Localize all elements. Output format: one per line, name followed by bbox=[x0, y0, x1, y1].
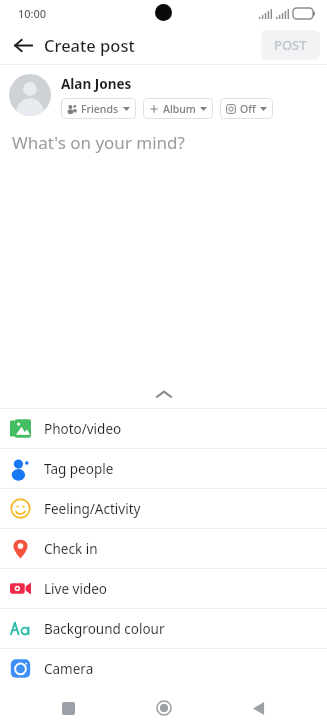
button[interactable]: Home bbox=[148, 692, 180, 724]
staticText: Create post bbox=[44, 34, 135, 56]
staticText: POST bbox=[274, 36, 307, 54]
staticText: Background colour bbox=[44, 620, 165, 638]
button[interactable]: Check in bbox=[0, 529, 327, 568]
staticText: Check in bbox=[44, 540, 98, 558]
button[interactable]: Recents bbox=[52, 692, 84, 724]
staticText: Feeling/Activity bbox=[44, 500, 141, 518]
staticText: GIF bbox=[44, 700, 66, 718]
button[interactable]: Background colour bbox=[0, 609, 327, 648]
button[interactable]: Tag people bbox=[0, 449, 327, 488]
staticText: What's on your mind? bbox=[12, 131, 185, 154]
button[interactable]: Live video bbox=[0, 569, 327, 608]
button[interactable]: Camera bbox=[0, 649, 327, 688]
button[interactable]: Collapse bbox=[0, 380, 327, 408]
button[interactable]: Feeling/Activity bbox=[0, 489, 327, 528]
staticText: Photo/video bbox=[44, 420, 122, 438]
staticText: Alan Jones bbox=[61, 75, 132, 93]
button[interactable]: POST bbox=[261, 30, 320, 60]
button[interactable]: Friends bbox=[61, 98, 136, 119]
button[interactable]: GIF bbox=[0, 689, 327, 728]
staticText: Live video bbox=[44, 580, 107, 598]
staticText: Friends bbox=[81, 102, 119, 116]
staticText: Album bbox=[163, 102, 196, 116]
button[interactable]: Back bbox=[6, 28, 40, 62]
staticText: Tag people bbox=[44, 460, 114, 478]
staticText: 10:00 bbox=[18, 6, 47, 21]
staticText: Off bbox=[240, 102, 256, 116]
button[interactable]: Off bbox=[220, 98, 273, 119]
button[interactable]: Album bbox=[143, 98, 213, 119]
button[interactable]: Photo/video bbox=[0, 409, 327, 448]
staticText: Camera bbox=[44, 660, 94, 678]
button[interactable]: Back bbox=[243, 692, 275, 724]
